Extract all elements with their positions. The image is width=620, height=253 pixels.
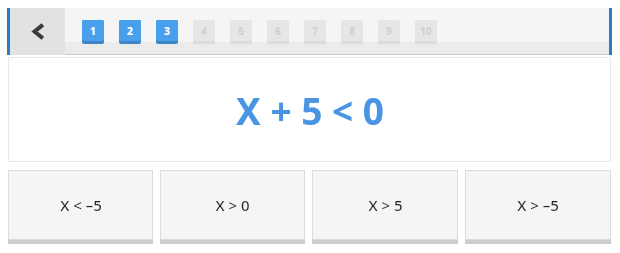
button[interactable]: X < –5 — [8, 170, 153, 244]
staticText: 1 — [90, 24, 96, 38]
button[interactable]: X > 0 — [160, 170, 305, 244]
staticText: 3 — [164, 24, 170, 38]
button[interactable]: 4 — [193, 20, 215, 44]
button[interactable]: 1 — [82, 20, 104, 44]
button[interactable]: 10 — [415, 20, 437, 44]
button[interactable]: X > –5 — [465, 170, 611, 244]
staticText: 6 — [275, 24, 281, 38]
staticText: X > 0 — [215, 195, 250, 215]
staticText: 2 — [127, 24, 133, 38]
staticText: 8 — [349, 24, 355, 38]
staticText: 9 — [386, 24, 392, 38]
button[interactable]: 9 — [378, 20, 400, 44]
button[interactable]: Back — [10, 8, 65, 55]
button[interactable]: 5 — [230, 20, 252, 44]
button[interactable]: 8 — [341, 20, 363, 44]
button[interactable]: 3 — [156, 20, 178, 44]
staticText: X < –5 — [60, 195, 102, 215]
staticText: 4 — [201, 24, 207, 38]
staticText: X > 5 — [368, 195, 403, 215]
staticText: 7 — [312, 24, 318, 38]
staticText: 5 — [238, 24, 244, 38]
staticText: X > –5 — [517, 195, 559, 215]
staticText: X + 5 < 0 — [236, 85, 384, 135]
staticText: 10 — [420, 24, 432, 38]
button[interactable]: X > 5 — [312, 170, 458, 244]
button[interactable]: 7 — [304, 20, 326, 44]
button[interactable]: 6 — [267, 20, 289, 44]
button[interactable]: 2 — [119, 20, 141, 44]
